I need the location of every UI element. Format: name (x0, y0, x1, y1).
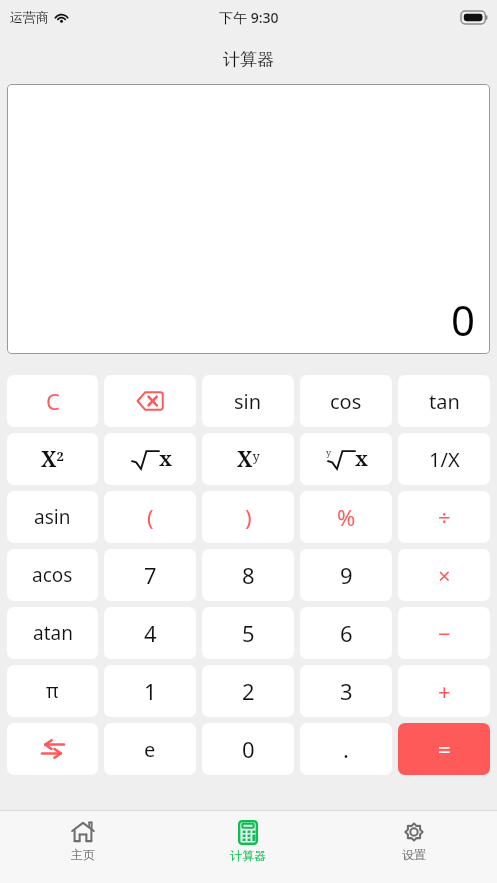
button[interactable]: acos (7, 549, 98, 601)
button[interactable]: ( (104, 491, 196, 543)
staticText: 9 (340, 560, 353, 590)
button[interactable]: Backspace (104, 375, 196, 427)
button[interactable]: % (300, 491, 392, 543)
button[interactable]: Swap (7, 723, 98, 775)
button[interactable]: 设置 (331, 811, 497, 883)
staticText: 4 (144, 618, 157, 648)
staticText: tan (429, 388, 460, 415)
button[interactable]: x (104, 433, 196, 485)
staticText: 计算器 (230, 848, 266, 863)
button[interactable]: 9 (300, 549, 392, 601)
button[interactable]: C (7, 375, 98, 427)
button[interactable]: = (398, 723, 490, 775)
button[interactable]: 7 (104, 549, 196, 601)
button[interactable]: 主页 (0, 811, 165, 883)
staticText: acos (32, 562, 73, 588)
button[interactable]: 6 (300, 607, 392, 659)
staticText: 2 (242, 676, 255, 706)
staticText: % (337, 502, 356, 532)
button[interactable]: 计算器 (165, 811, 331, 883)
staticText: atan (33, 620, 73, 646)
button[interactable]: 1/X (398, 433, 490, 485)
staticText: . (343, 734, 349, 764)
button[interactable]: atan (7, 607, 98, 659)
staticText: × (438, 560, 451, 590)
staticText: 7 (144, 560, 157, 590)
staticText: asin (34, 504, 71, 530)
staticText: x (159, 445, 172, 472)
button[interactable]: ) (202, 491, 294, 543)
button[interactable]: 2 (202, 665, 294, 717)
staticText: cos (330, 388, 362, 415)
staticText: 运营商 (10, 9, 49, 25)
staticText: C (46, 386, 60, 416)
staticText: e (144, 736, 156, 763)
staticText: 1 (144, 676, 157, 706)
staticText: ÷ (438, 502, 451, 532)
staticText: y (326, 446, 332, 458)
button[interactable]: − (398, 607, 490, 659)
button[interactable]: 0 (202, 723, 294, 775)
staticText: 0 (242, 734, 255, 764)
button[interactable]: X2 (7, 433, 98, 485)
staticText: ) (245, 502, 252, 532)
staticText: Xy (237, 445, 260, 474)
button[interactable]: sin (202, 375, 294, 427)
staticText: 8 (242, 560, 255, 590)
staticText: ( (147, 502, 154, 532)
staticText: 0 (451, 291, 476, 348)
button[interactable]: 4 (104, 607, 196, 659)
staticText: sin (234, 388, 262, 415)
button[interactable]: cos (300, 375, 392, 427)
button[interactable]: + (398, 665, 490, 717)
staticText: 5 (242, 618, 255, 648)
button[interactable]: tan (398, 375, 490, 427)
staticText: = (438, 734, 451, 764)
staticText: π (46, 678, 59, 704)
button[interactable]: × (398, 549, 490, 601)
staticText: + (438, 676, 451, 706)
button[interactable]: Xy (202, 433, 294, 485)
button[interactable]: 1 (104, 665, 196, 717)
staticText: 主页 (71, 847, 95, 862)
button[interactable]: e (104, 723, 196, 775)
staticText: 下午 9:30 (219, 8, 279, 27)
button[interactable]: . (300, 723, 392, 775)
staticText: x (355, 445, 368, 472)
button[interactable]: ÷ (398, 491, 490, 543)
staticText: 6 (340, 618, 353, 648)
staticText: X2 (41, 445, 64, 474)
button[interactable]: 5 (202, 607, 294, 659)
staticText: 1/X (429, 446, 460, 473)
staticText: 设置 (402, 847, 426, 862)
staticText: 计算器 (223, 49, 274, 70)
button[interactable]: 3 (300, 665, 392, 717)
staticText: − (438, 618, 451, 648)
staticText: 3 (340, 676, 353, 706)
button[interactable]: π (7, 665, 98, 717)
button[interactable]: asin (7, 491, 98, 543)
button[interactable]: 8 (202, 549, 294, 601)
button[interactable]: y (300, 433, 392, 485)
